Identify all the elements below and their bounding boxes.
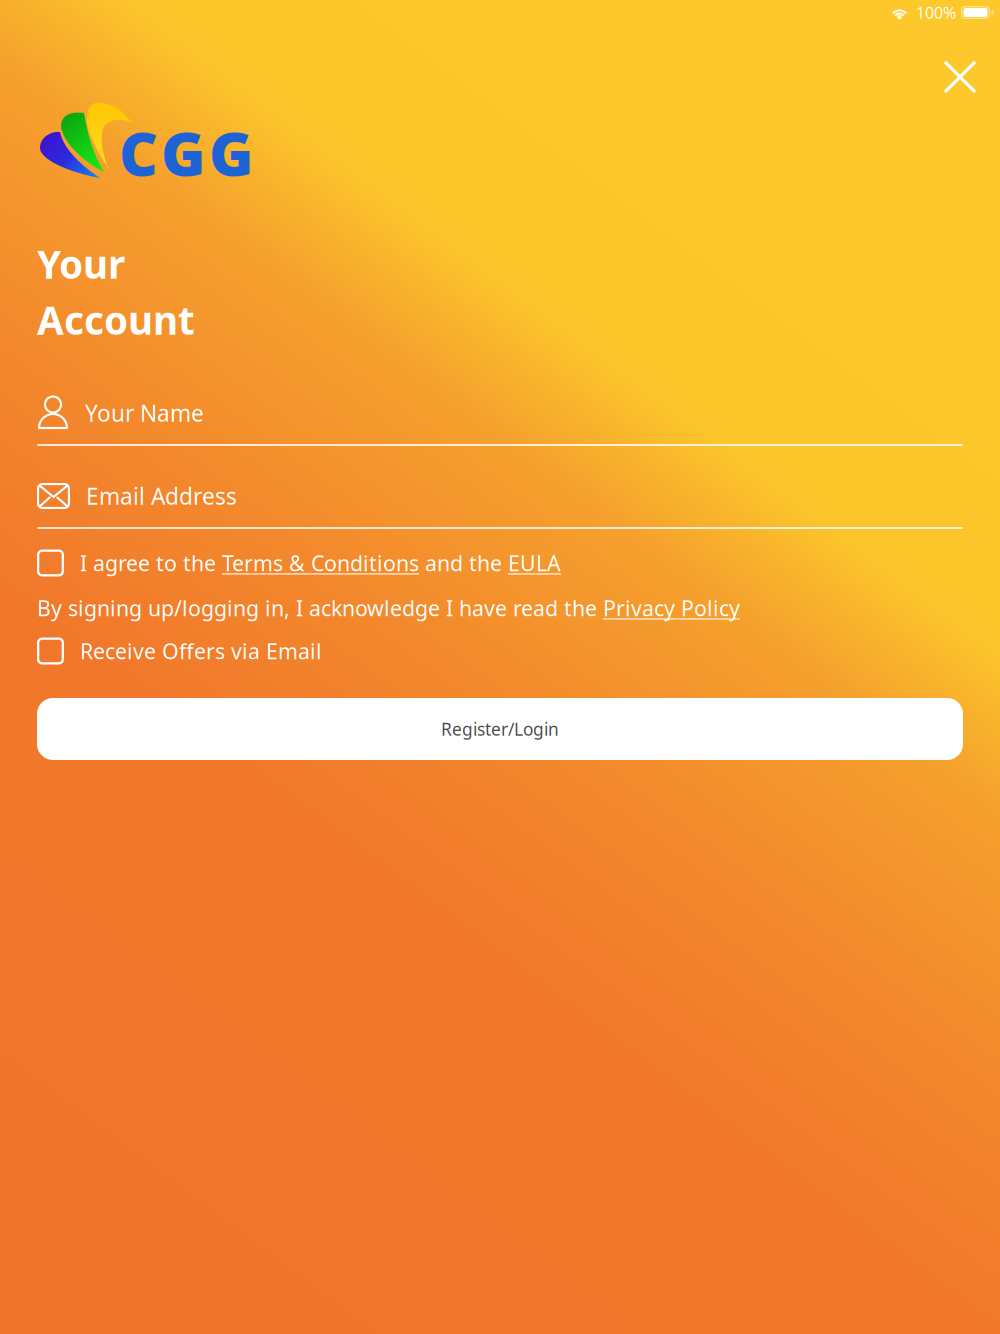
- staticText: CGG: [119, 113, 253, 193]
- button[interactable]: Close: [928, 45, 992, 109]
- button[interactable]: Register/Login: [37, 698, 963, 760]
- button[interactable]: I agree to the Terms & Conditions and th…: [37, 546, 963, 580]
- staticText: Your Name: [85, 398, 204, 428]
- staticText: Your: [37, 238, 125, 289]
- staticText: 100%: [916, 2, 956, 23]
- staticText: By signing up/logging in, I acknowledge …: [37, 594, 740, 622]
- staticText: I agree to the Terms & Conditions and th…: [80, 549, 561, 577]
- button[interactable]: Receive Offers via Email: [37, 634, 963, 668]
- staticText: Email Address: [86, 481, 237, 511]
- staticText: Account: [37, 294, 195, 345]
- button[interactable]: By signing up/logging in, I acknowledge …: [37, 594, 963, 622]
- staticText: Receive Offers via Email: [80, 637, 322, 665]
- staticText: Register/Login: [441, 717, 559, 740]
